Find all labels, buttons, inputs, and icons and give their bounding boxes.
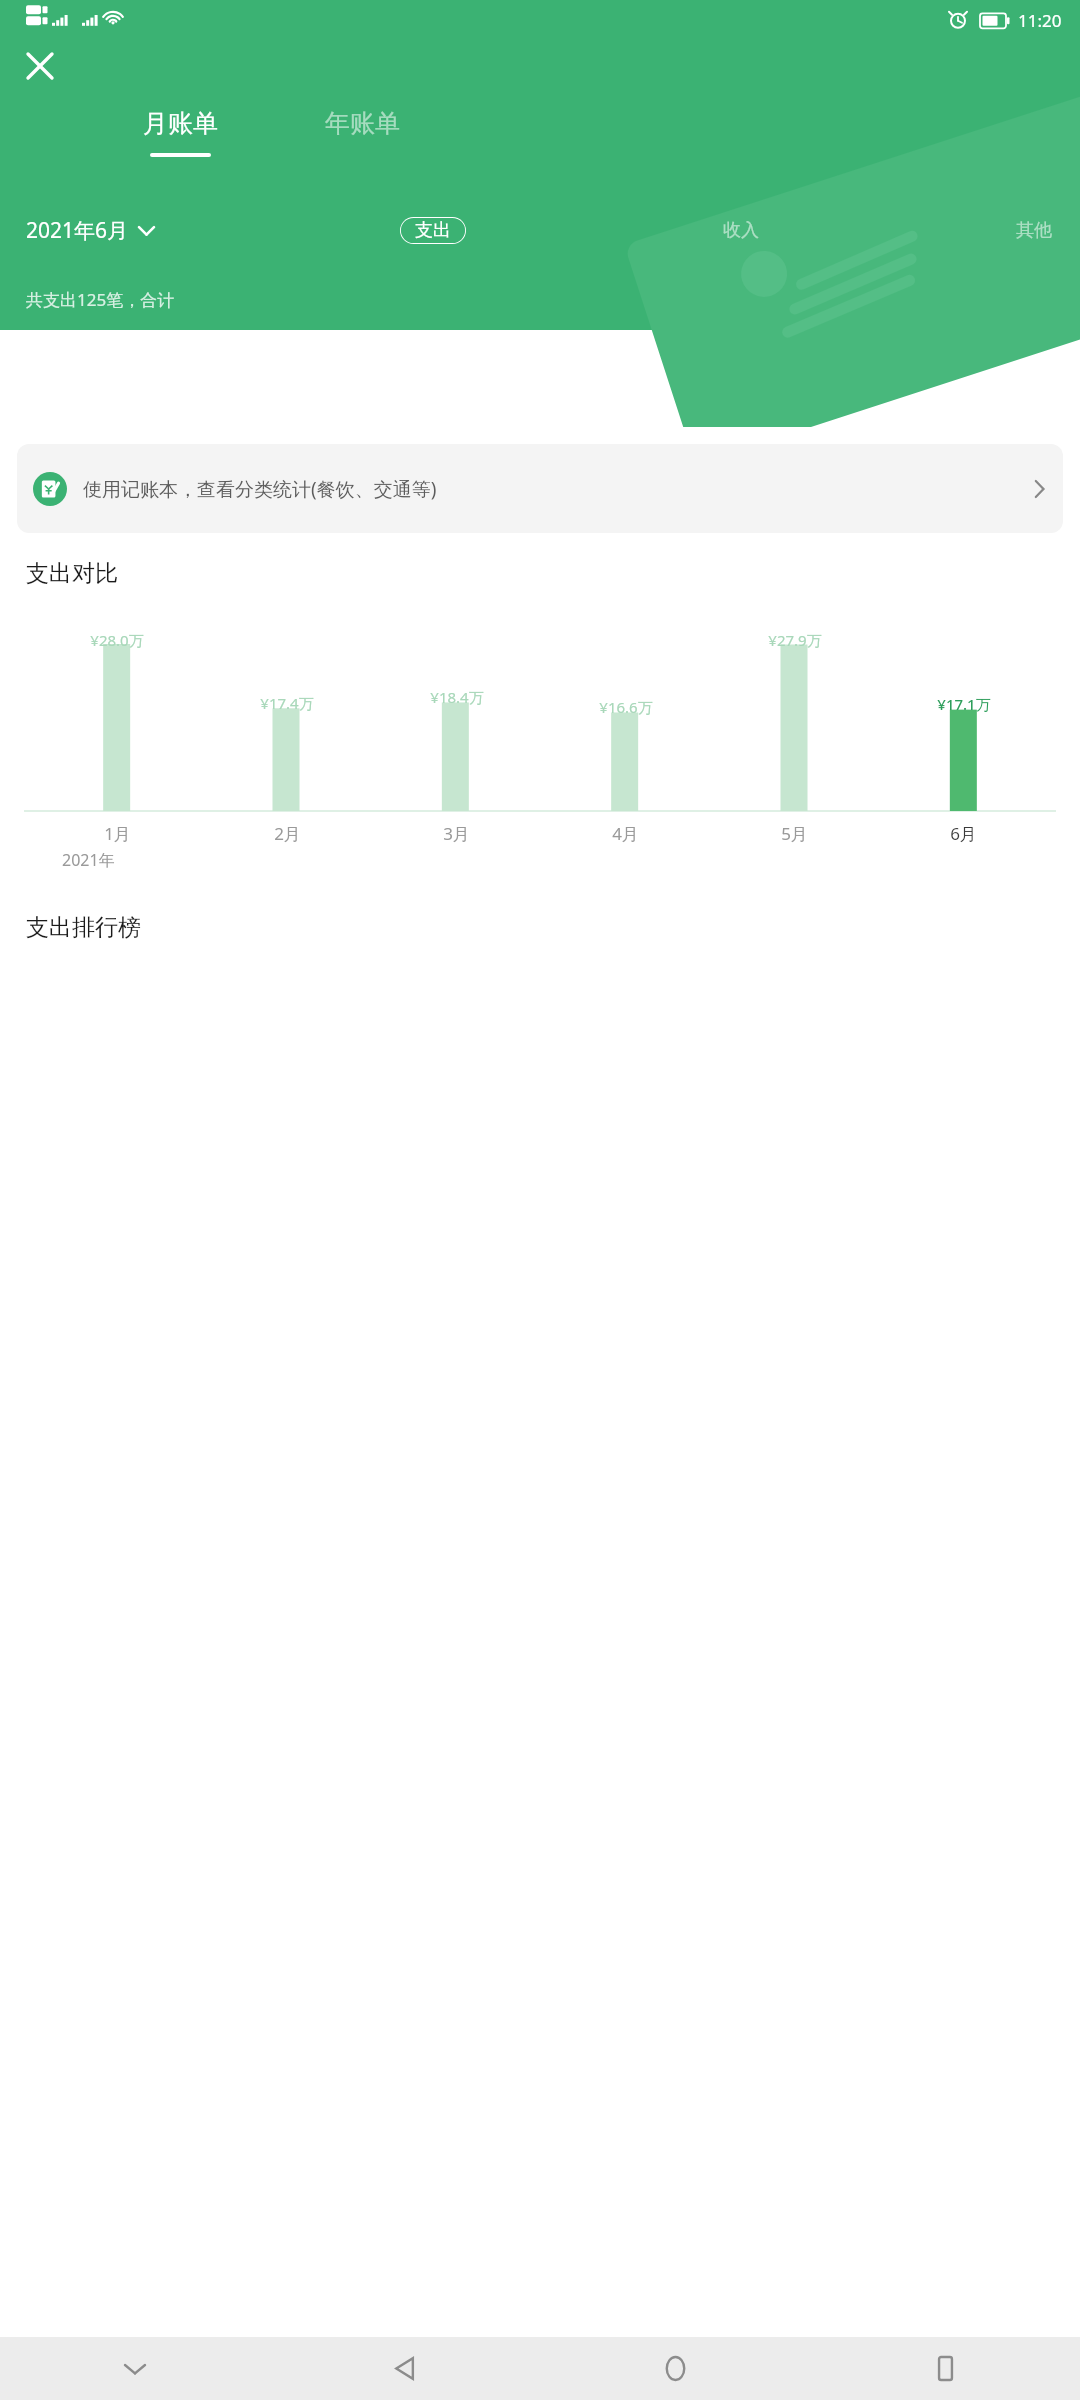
staticText: 2月 <box>274 822 301 845</box>
button[interactable]: Home <box>540 2337 810 2400</box>
staticText: 6月 <box>950 822 977 845</box>
staticText: 其他 <box>1016 219 1052 242</box>
button[interactable]: Hide keyboard <box>0 2337 270 2400</box>
staticText: ¥28.0万 <box>90 630 144 650</box>
button[interactable]: 年账单 <box>302 108 422 139</box>
staticText: 支出 <box>415 219 451 242</box>
staticText: 4月 <box>612 822 639 845</box>
staticText: 3月 <box>443 822 470 845</box>
button[interactable]: 收入 <box>723 219 759 242</box>
staticText: 11:20 <box>1018 9 1062 32</box>
staticText: ¥17.4万 <box>260 693 314 713</box>
staticText: ¥17.1万 <box>937 694 991 714</box>
button[interactable]: Close <box>14 40 66 92</box>
staticText: ¥16.6万 <box>599 697 653 717</box>
staticText: 170570.07 <box>52 325 305 396</box>
staticText: 1月 <box>104 822 131 845</box>
staticText: 2021年6月 <box>26 216 129 245</box>
staticText: 年账单 <box>325 108 400 139</box>
staticText: 支出对比 <box>26 559 118 588</box>
staticText: ¥27.9万 <box>768 630 822 650</box>
button[interactable]: 使用记账本，查看分类统计(餐饮、交通等) <box>17 444 1063 533</box>
staticText: 月账单 <box>143 108 218 139</box>
staticText: 支出排行榜 <box>26 913 141 942</box>
staticText: 收入 <box>723 219 759 242</box>
button[interactable]: 2021年6月 <box>26 216 154 245</box>
staticText: 使用记账本，查看分类统计(餐饮、交通等) <box>83 476 1021 502</box>
staticText: 共支出125笔，合计 <box>26 288 175 311</box>
staticText: 5月 <box>781 822 808 845</box>
staticText: 2021年 <box>62 849 115 871</box>
staticText: ¥18.4万 <box>430 687 484 707</box>
button[interactable]: 其他 <box>1016 219 1052 242</box>
button[interactable]: 月账单 <box>120 108 240 157</box>
button[interactable]: Recents <box>810 2337 1080 2400</box>
button[interactable]: Back <box>270 2337 540 2400</box>
button[interactable]: 支出 <box>400 217 466 244</box>
